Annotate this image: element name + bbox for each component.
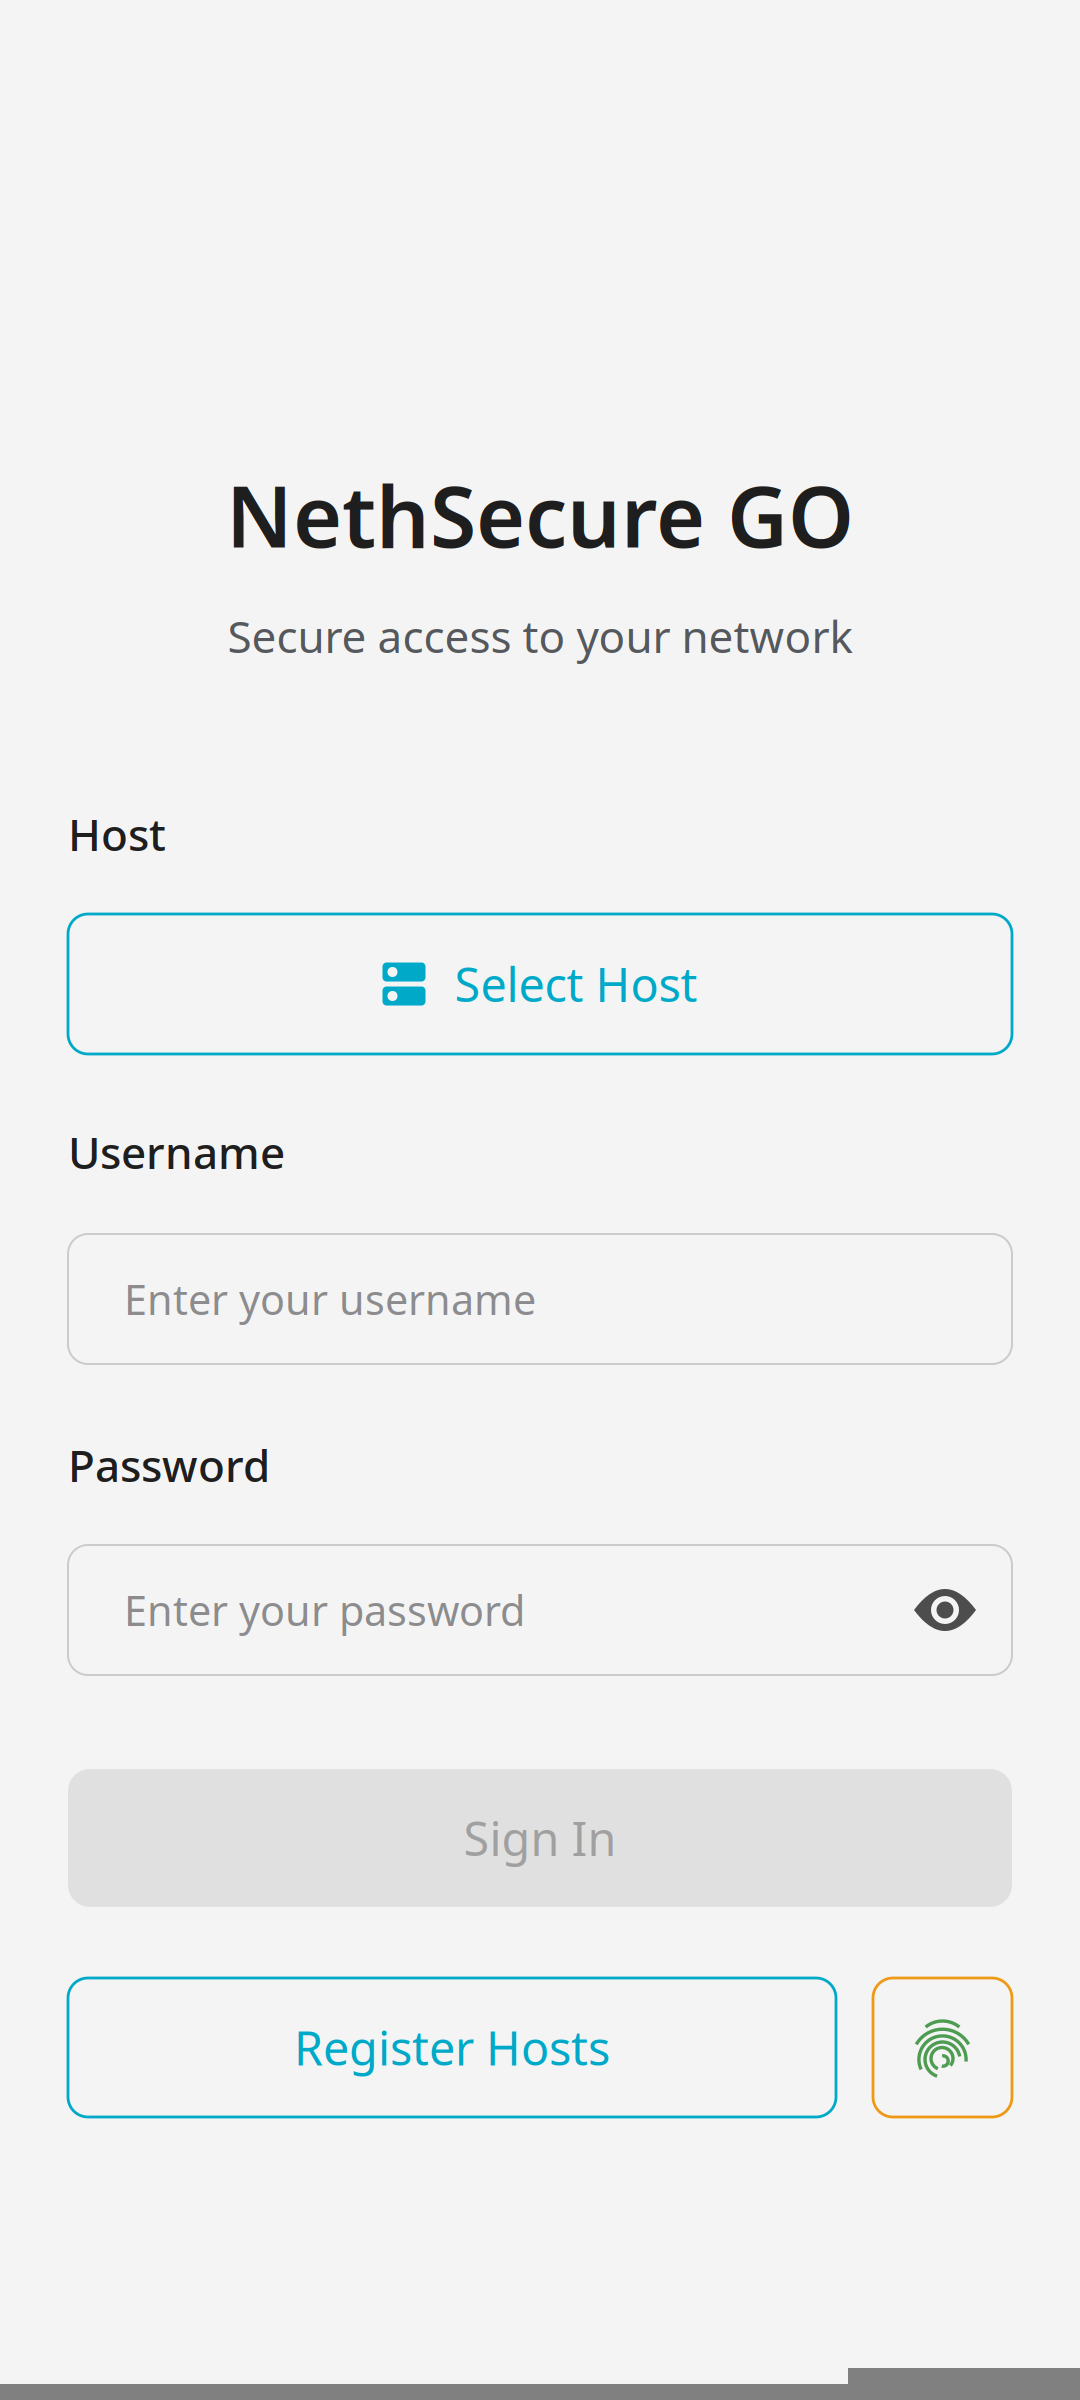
button[interactable]: Show password <box>914 1589 1012 1631</box>
staticText: Sign In <box>463 1807 616 1869</box>
staticText: Enter your username <box>124 1272 536 1326</box>
staticText: NethSecure GO <box>226 459 854 571</box>
staticText: Password <box>68 1436 270 1494</box>
staticText: Enter your password <box>124 1583 525 1637</box>
button[interactable]: Register Hosts <box>68 1978 836 2117</box>
staticText: Secure access to your network <box>227 607 852 665</box>
button[interactable]: Select Host <box>68 914 1012 1054</box>
button[interactable]: Sign in with fingerprint <box>873 1978 1012 2117</box>
staticText: Host <box>68 805 166 863</box>
staticText: Select Host <box>454 953 697 1015</box>
staticText: Register Hosts <box>294 2016 610 2078</box>
staticText: Username <box>68 1123 285 1181</box>
button[interactable]: Sign In <box>68 1769 1012 1907</box>
